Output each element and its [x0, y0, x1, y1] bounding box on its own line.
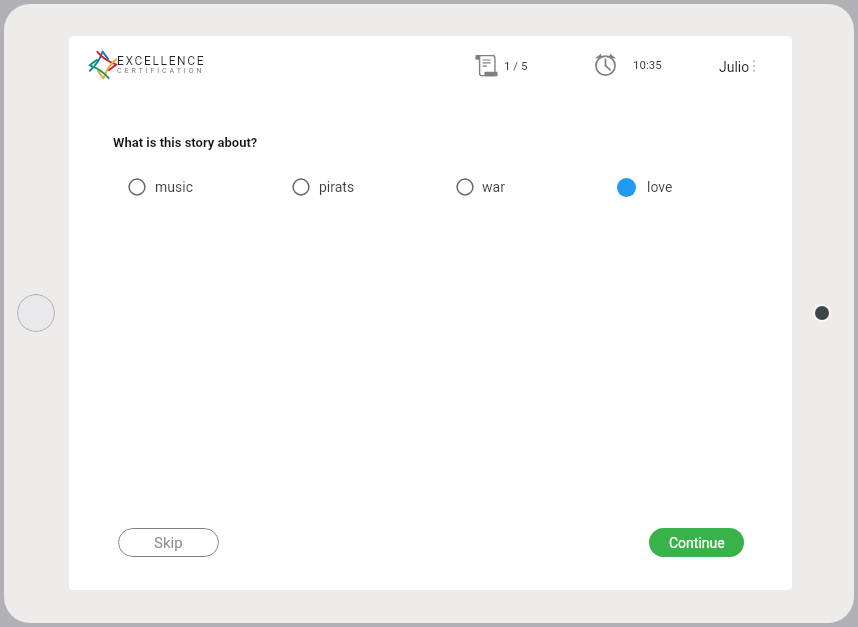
staticText: Continue — [669, 535, 725, 551]
staticText: CERTIFICATION — [117, 67, 205, 75]
button[interactable]: pirats — [292, 170, 420, 204]
button[interactable]: Julio — [719, 49, 766, 85]
button[interactable]: war — [456, 170, 584, 204]
button[interactable]: EXCELLENCE — [89, 48, 206, 82]
staticText: What is this story about? — [113, 135, 258, 150]
button[interactable]: More options — [746, 58, 762, 74]
button[interactable]: Skip — [118, 528, 219, 557]
staticText: 10:35 — [633, 58, 662, 71]
button[interactable]: music — [128, 170, 256, 204]
staticText: love — [647, 179, 673, 195]
staticText: Julio — [719, 59, 750, 75]
button[interactable]: Home — [17, 294, 55, 332]
staticText: EXCELLENCE — [117, 54, 206, 68]
staticText: music — [155, 179, 193, 195]
staticText: 1 / 5 — [504, 59, 528, 72]
staticText: war — [482, 179, 505, 195]
button[interactable]: love — [617, 170, 745, 204]
staticText: pirats — [319, 179, 355, 195]
staticText: Skip — [154, 534, 183, 552]
button[interactable]: Continue — [649, 528, 744, 557]
button[interactable]: 1 / 5 — [475, 47, 528, 83]
